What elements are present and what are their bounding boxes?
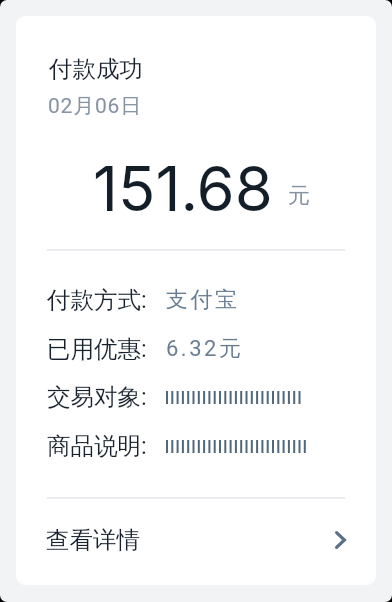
- staticText: 元: [288, 182, 310, 210]
- staticText: 交易对象:: [47, 382, 147, 412]
- staticText: 查看详情: [46, 525, 140, 555]
- staticText: 商品说明:: [47, 431, 147, 461]
- staticText: 付款成功: [49, 54, 143, 84]
- button[interactable]: 商品说明:: [47, 429, 361, 463]
- button[interactable]: 已用优惠:: [47, 332, 361, 366]
- button[interactable]: 付款方式:: [47, 283, 361, 317]
- staticText: 151.68: [93, 151, 273, 225]
- staticText: 02月06日: [48, 93, 143, 119]
- button[interactable]: 查看详情: [46, 523, 346, 557]
- staticText: 付款方式:: [47, 285, 147, 315]
- button[interactable]: 交易对象:: [47, 380, 361, 414]
- staticText: 6.32元: [166, 335, 244, 363]
- staticText: 支付宝: [166, 286, 240, 314]
- staticText: 已用优惠:: [47, 334, 147, 364]
